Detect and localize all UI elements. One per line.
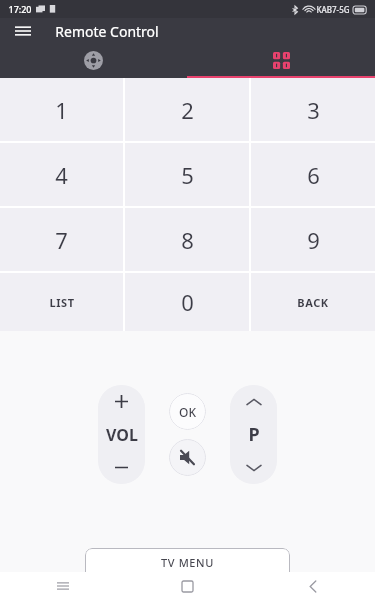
button[interactable]: OK <box>169 393 206 430</box>
button[interactable]: P <box>230 385 277 484</box>
button[interactable]: 2 <box>125 78 249 141</box>
button[interactable]: VOL <box>98 385 145 484</box>
button[interactable]: Number keypad tab <box>187 44 375 76</box>
staticText: 8 <box>181 225 194 255</box>
staticText: Remote Control <box>55 22 159 41</box>
staticText: 17:20 <box>8 3 32 15</box>
button[interactable]: LIST <box>0 273 123 331</box>
button[interactable]: Home <box>125 572 250 600</box>
button[interactable]: 4 <box>0 143 123 206</box>
button[interactable]: TV MENU <box>85 548 290 582</box>
button[interactable]: 6 <box>251 143 375 206</box>
button[interactable]: 3 <box>251 78 375 141</box>
staticText: P <box>248 422 260 447</box>
button[interactable]: 7 <box>0 208 123 271</box>
staticText: 1 <box>55 95 68 125</box>
staticText: 2 <box>181 95 194 125</box>
staticText: 4 <box>55 160 68 190</box>
button[interactable]: 8 <box>125 208 249 271</box>
button[interactable]: Recent apps <box>0 572 125 600</box>
button[interactable]: Directional pad tab <box>0 44 187 76</box>
button[interactable]: 1 <box>0 78 123 141</box>
staticText: 0 <box>181 287 194 317</box>
staticText: OK <box>179 404 196 420</box>
button[interactable]: Mute <box>169 439 206 476</box>
button[interactable]: BACK <box>251 273 375 331</box>
staticText: 5 <box>181 160 194 190</box>
staticText: VOL <box>106 424 138 446</box>
staticText: BACK <box>297 295 329 310</box>
staticText: KAB7-5G <box>316 4 350 15</box>
button[interactable]: Open navigation menu <box>10 18 36 44</box>
button[interactable]: 0 <box>125 273 249 331</box>
staticText: 7 <box>55 225 68 255</box>
staticText: 6 <box>307 160 320 190</box>
button[interactable]: 5 <box>125 143 249 206</box>
button[interactable]: 9 <box>251 208 375 271</box>
button[interactable]: Back <box>250 572 375 600</box>
staticText: 9 <box>307 225 320 255</box>
staticText: TV MENU <box>161 555 214 570</box>
staticText: 3 <box>307 95 320 125</box>
staticText: LIST <box>49 295 75 310</box>
